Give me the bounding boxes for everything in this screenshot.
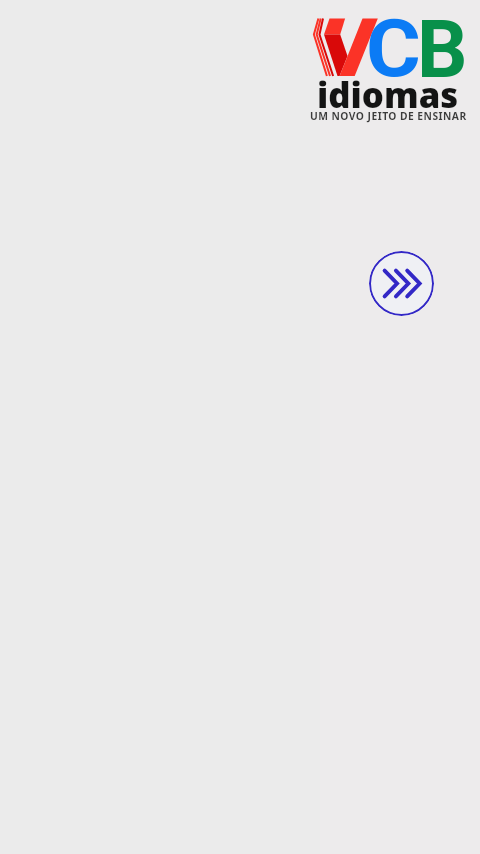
staticText: C (366, 3, 421, 96)
staticText: UM NOVO JEITO DE ENSINAR (310, 109, 467, 123)
staticText: B (417, 4, 468, 97)
staticText: idiomas (317, 71, 459, 118)
button[interactable]: Next (369, 251, 434, 316)
